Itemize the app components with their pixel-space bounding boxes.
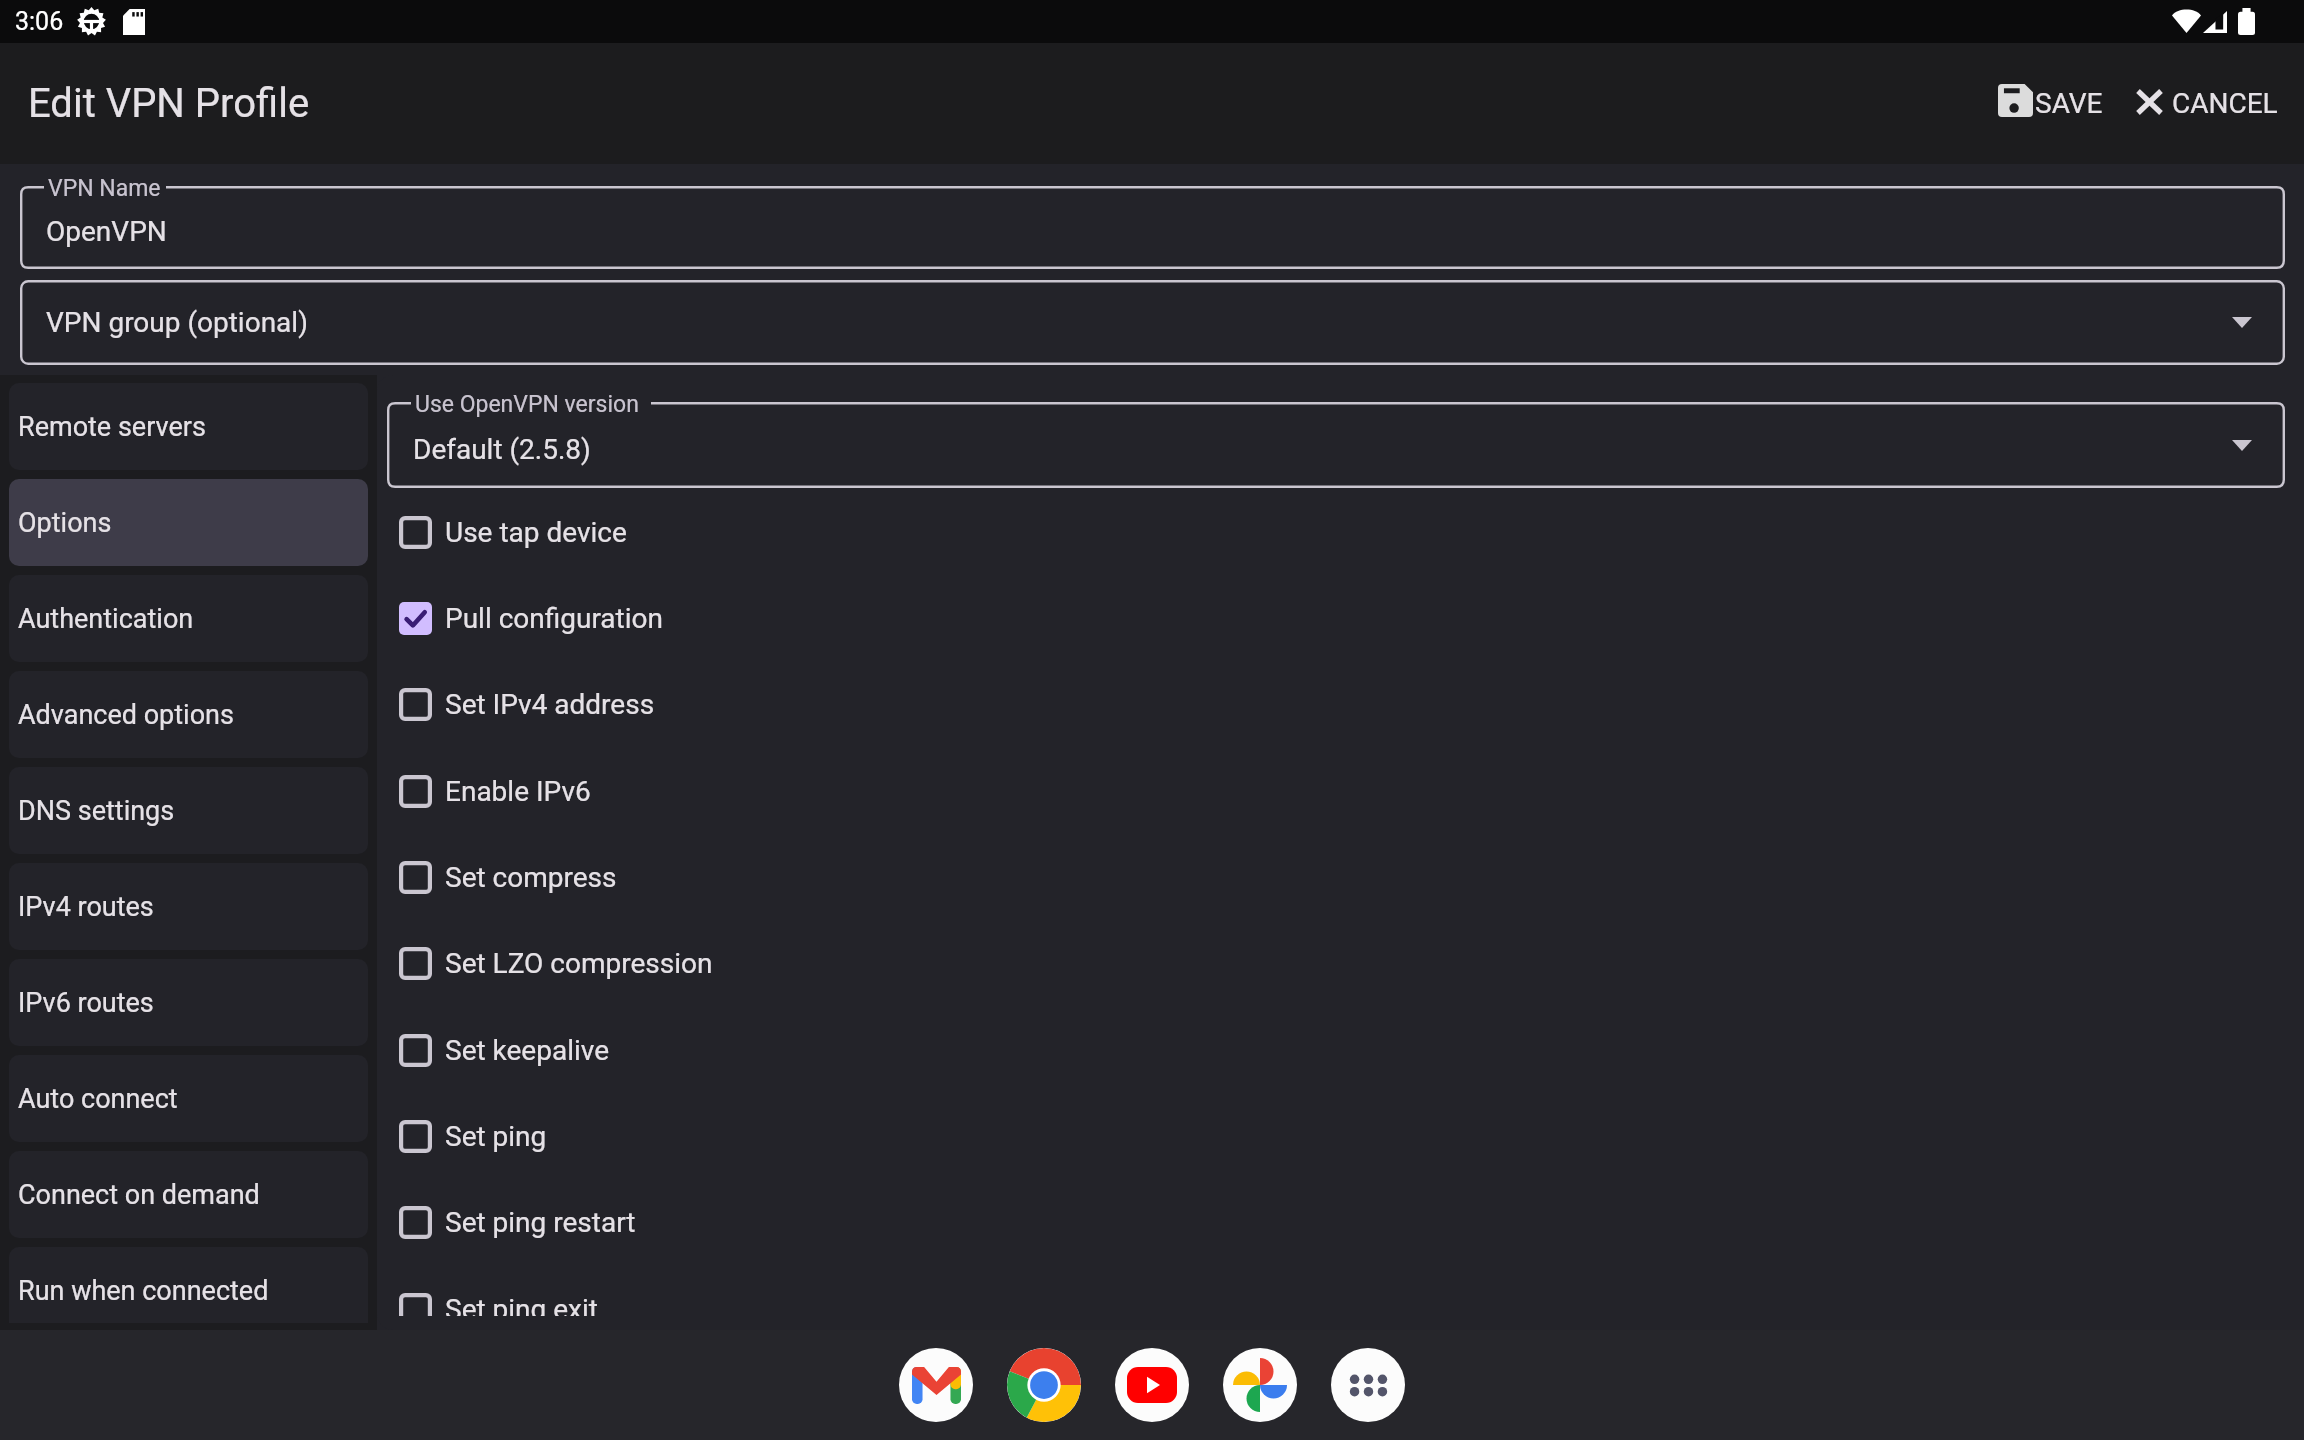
button[interactable]: Set ping restart <box>377 1179 2304 1266</box>
staticText: SAVE <box>2035 87 2103 120</box>
button[interactable]: YouTube <box>1115 1348 1189 1422</box>
staticText: IPv6 routes <box>18 987 154 1019</box>
staticText: Set compress <box>445 861 617 894</box>
staticText: Options <box>18 507 112 539</box>
staticText: Set keepalive <box>445 1034 609 1067</box>
staticText: Set IPv4 address <box>445 688 655 721</box>
button[interactable]: All apps <box>1331 1348 1405 1422</box>
button[interactable]: Set LZO compression <box>377 920 2304 1007</box>
button[interactable]: Use tap device <box>377 489 2304 575</box>
button[interactable]: Run when connected <box>9 1247 368 1323</box>
button[interactable]: Options <box>9 479 368 566</box>
staticText: Use tap device <box>445 516 627 549</box>
staticText: Set ping exit <box>445 1293 598 1316</box>
staticText: OpenVPN <box>46 215 167 248</box>
button[interactable]: Set keepalive <box>377 1007 2304 1093</box>
button[interactable]: CANCEL <box>2126 73 2288 134</box>
button[interactable]: Set ping <box>377 1093 2304 1179</box>
staticText: Edit VPN Profile <box>28 80 310 127</box>
button[interactable]: Set compress <box>377 834 2304 920</box>
button[interactable]: Advanced options <box>9 671 368 758</box>
button[interactable]: Connect on demand <box>9 1151 368 1238</box>
button[interactable]: Photos <box>1223 1348 1297 1422</box>
button[interactable]: Set IPv4 address <box>377 661 2304 748</box>
staticText: VPN group (optional) <box>46 306 308 339</box>
button[interactable]: Set ping exit <box>377 1266 2304 1316</box>
staticText: Set ping <box>445 1120 547 1153</box>
staticText: Connect on demand <box>18 1179 260 1211</box>
button[interactable]: Remote servers <box>9 383 368 470</box>
button[interactable]: Authentication <box>9 575 368 662</box>
button[interactable]: IPv4 routes <box>9 863 368 950</box>
staticText: Set ping restart <box>445 1206 636 1239</box>
button[interactable]: Gmail <box>899 1348 973 1422</box>
staticText: Use OpenVPN version <box>415 391 639 418</box>
staticText: VPN Name <box>48 175 161 202</box>
staticText: IPv4 routes <box>18 891 154 923</box>
button[interactable]: Default (2.5.8) <box>387 402 2285 488</box>
button[interactable]: Auto connect <box>9 1055 368 1142</box>
button[interactable]: IPv6 routes <box>9 959 368 1046</box>
button[interactable]: SAVE <box>1988 73 2113 134</box>
button[interactable]: Pull configuration <box>377 575 2304 661</box>
staticText: Default (2.5.8) <box>413 433 591 466</box>
staticText: Authentication <box>18 603 194 635</box>
staticText: Auto connect <box>18 1083 178 1115</box>
staticText: Run when connected <box>18 1275 269 1307</box>
button[interactable]: VPN group (optional) <box>20 280 2285 365</box>
staticText: DNS settings <box>18 795 175 827</box>
staticText: Enable IPv6 <box>445 775 591 808</box>
button[interactable]: DNS settings <box>9 767 368 854</box>
button[interactable]: Chrome <box>1007 1348 1081 1422</box>
staticText: Set LZO compression <box>445 947 713 980</box>
staticText: Remote servers <box>18 411 206 443</box>
button[interactable]: Enable IPv6 <box>377 748 2304 834</box>
staticText: CANCEL <box>2172 87 2278 120</box>
staticText: Advanced options <box>18 699 234 731</box>
staticText: Pull configuration <box>445 602 663 635</box>
staticText: 3:06 <box>15 7 64 36</box>
